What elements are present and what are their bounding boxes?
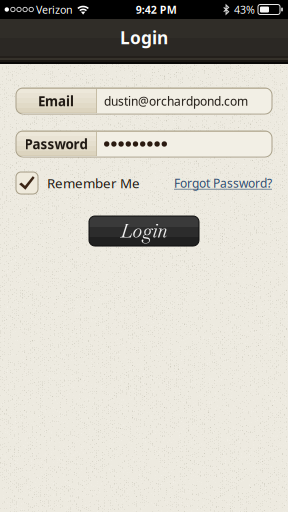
staticText: dustin@orchardpond.com: [104, 93, 248, 109]
staticText: Email: [38, 92, 74, 110]
staticText: Forgot Password?: [174, 175, 272, 191]
staticText: Remember Me: [47, 174, 140, 192]
staticText: 43%: [234, 2, 255, 17]
button[interactable]: Remember Me: [16, 172, 140, 194]
staticText: 9:42 PM: [136, 2, 177, 17]
staticText: Login: [120, 219, 167, 243]
staticText: Password: [24, 135, 87, 153]
staticText: Verizon: [36, 2, 73, 17]
button[interactable]: Forgot Password?: [174, 175, 272, 191]
button[interactable]: Login: [89, 216, 199, 246]
staticText: Login: [120, 26, 168, 49]
